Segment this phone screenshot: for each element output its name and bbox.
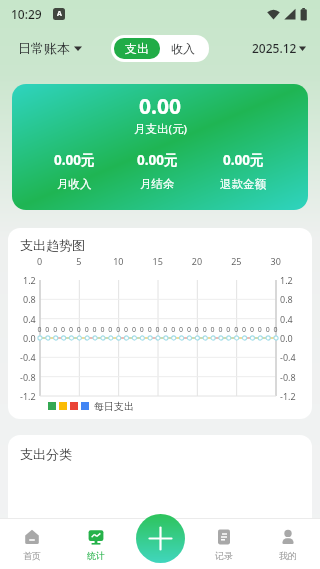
- button[interactable]: 收入: [160, 38, 206, 59]
- staticText: 月收入: [57, 177, 92, 191]
- button[interactable]: 统计: [64, 519, 128, 569]
- button[interactable]: 记录: [192, 519, 256, 569]
- button[interactable]: 首页: [0, 519, 64, 569]
- staticText: 日常账本: [18, 40, 70, 56]
- staticText: 我的: [279, 550, 297, 561]
- staticText: 退款金额: [220, 177, 266, 191]
- staticText: 0.00: [139, 92, 181, 121]
- button[interactable]: 0.00: [12, 84, 308, 210]
- button[interactable]: 2025.12: [252, 40, 306, 56]
- button[interactable]: 日常账本: [18, 40, 82, 56]
- button[interactable]: [136, 514, 185, 563]
- staticText: 月结余: [140, 177, 175, 191]
- button[interactable]: 我的: [256, 519, 320, 569]
- staticText: 10:29: [11, 6, 42, 22]
- staticText: 2025.12: [252, 40, 297, 56]
- staticText: 首页: [23, 550, 41, 561]
- staticText: 月支出(元): [134, 121, 187, 137]
- button[interactable]: 支出: [114, 38, 160, 59]
- staticText: 0.00元: [54, 151, 95, 169]
- staticText: 支出分类: [20, 446, 72, 462]
- staticText: 收入: [171, 41, 195, 56]
- staticText: 支出趋势图: [20, 237, 85, 253]
- staticText: 统计: [87, 550, 105, 561]
- staticText: 0.00元: [137, 151, 178, 169]
- staticText: 支出: [125, 41, 149, 56]
- staticText: A: [57, 9, 62, 19]
- staticText: 0.00元: [223, 151, 264, 169]
- staticText: 记录: [215, 550, 233, 561]
